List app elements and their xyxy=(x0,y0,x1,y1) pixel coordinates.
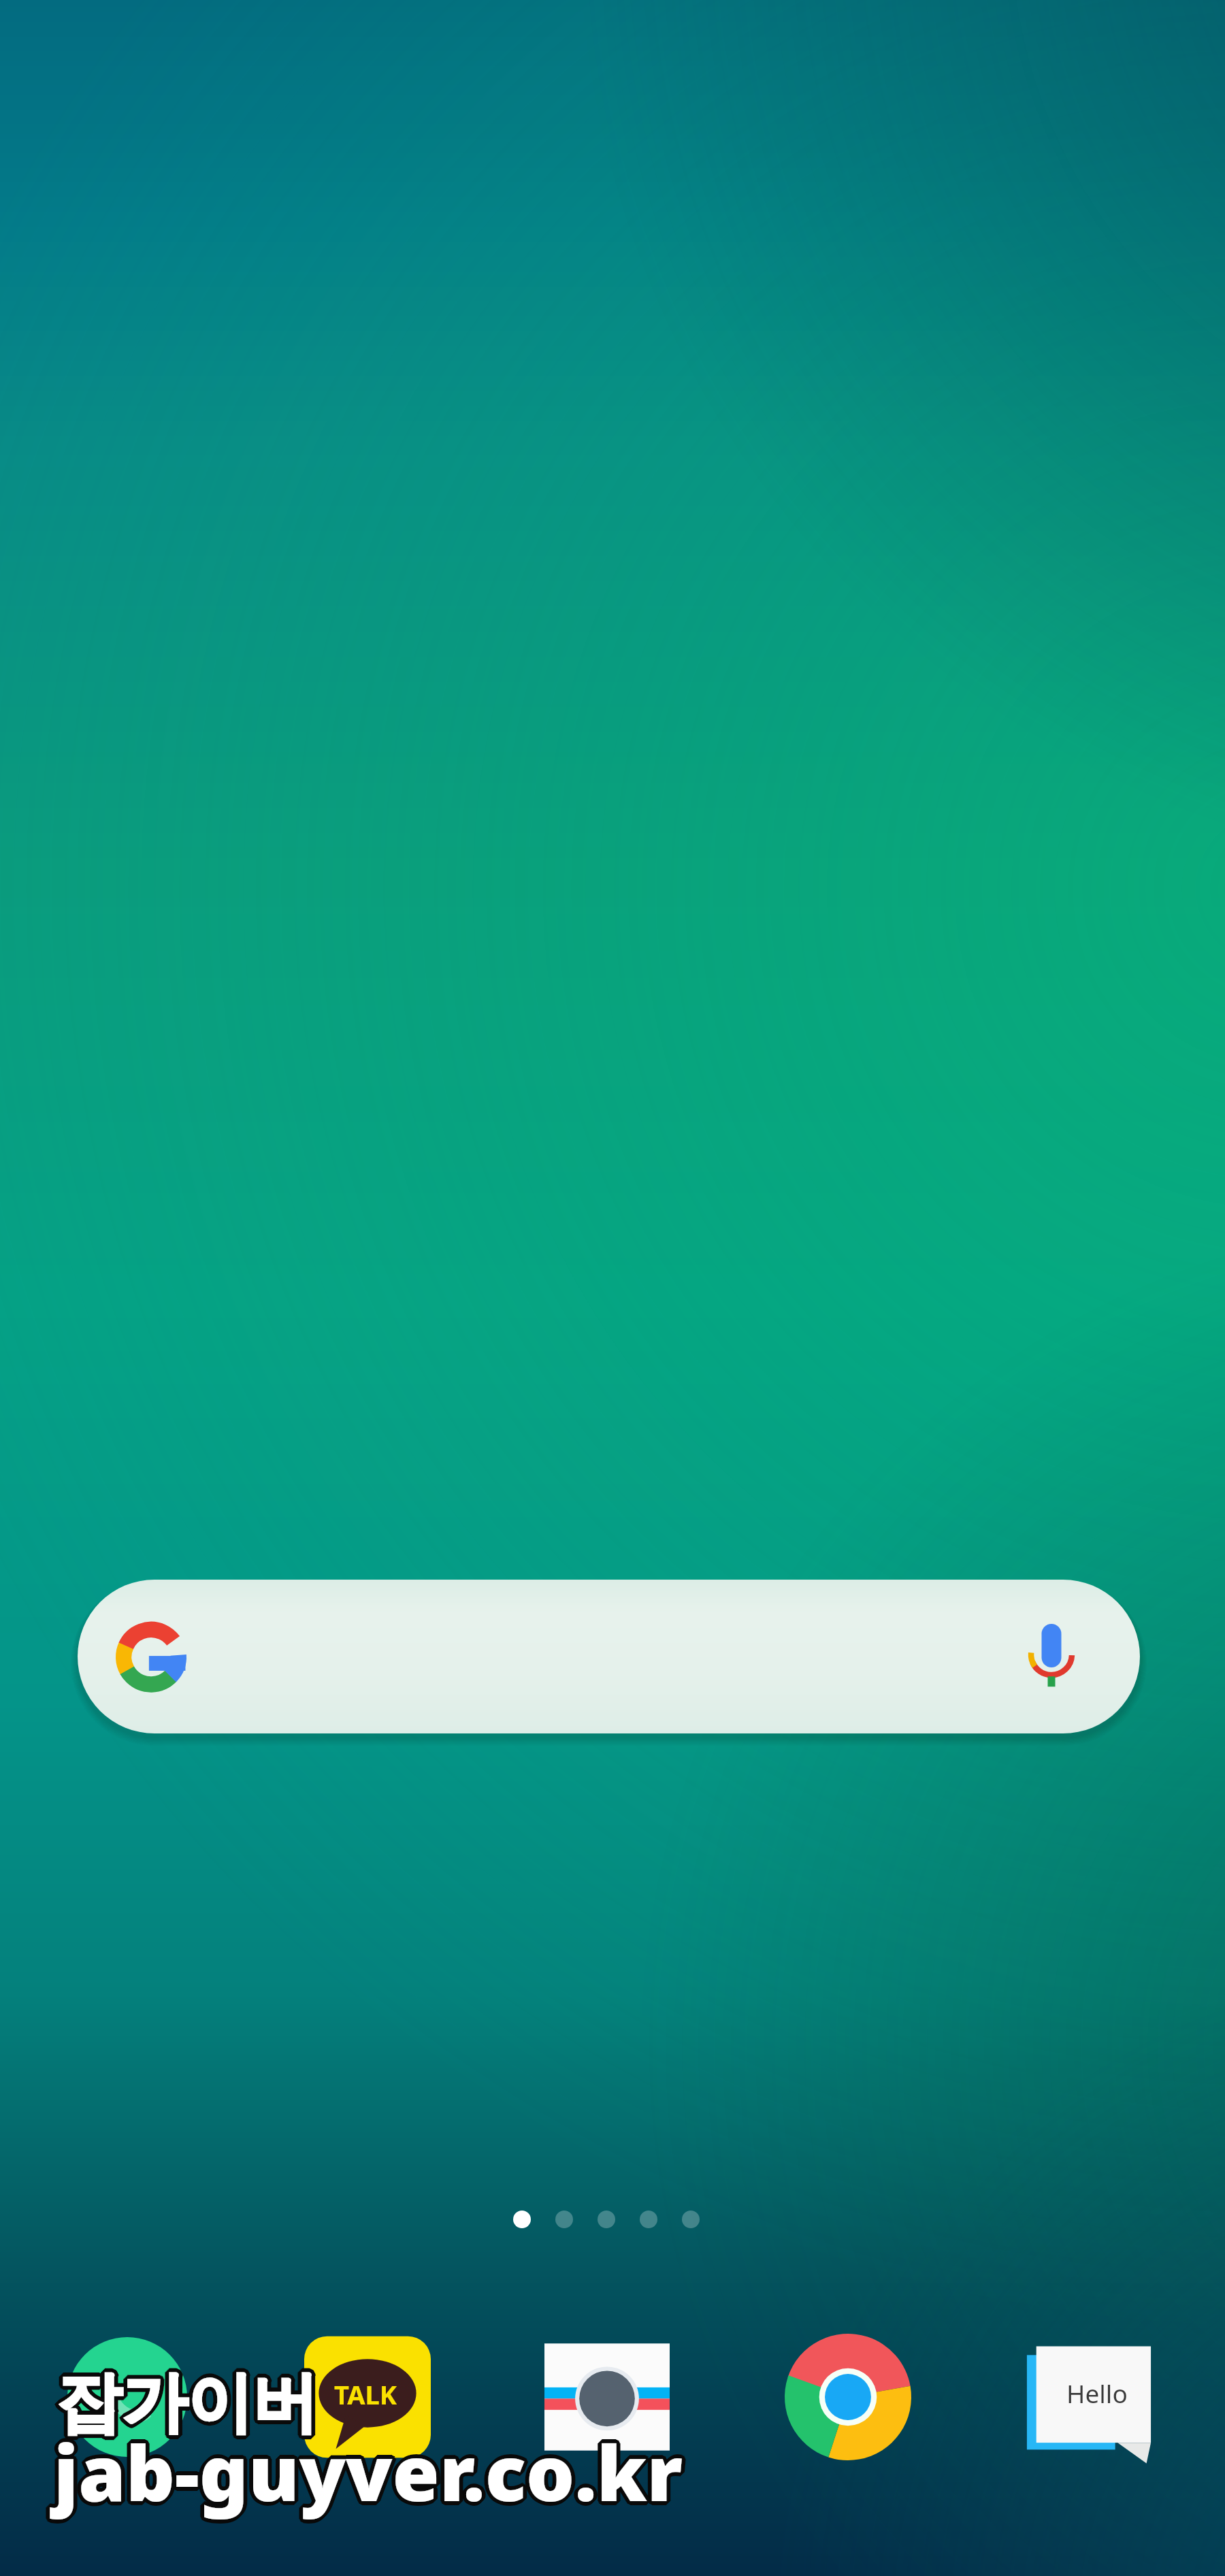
staticText: 잡가이버 xyxy=(57,2360,318,2442)
staticText: 잡가이버 xyxy=(56,2366,318,2449)
staticText: jab-guyver.co.kr xyxy=(56,2421,686,2525)
staticText: 잡가이버 xyxy=(54,2364,316,2447)
staticText: jab-guyver.co.kr xyxy=(52,2421,682,2525)
staticText: jab-guyver.co.kr xyxy=(56,2417,686,2521)
staticText: 잡가이버 xyxy=(56,2362,318,2445)
staticText: jab-guyver.co.kr xyxy=(54,2424,683,2528)
staticText: 잡가이버 xyxy=(57,2364,318,2446)
staticText: jab-guyver.co.kr xyxy=(56,2419,686,2523)
staticText: jab-guyver.co.kr xyxy=(52,2422,681,2526)
staticText: 잡가이버 xyxy=(55,2360,316,2442)
staticText: 잡가이버 xyxy=(54,2361,315,2443)
staticText: 잡가이버 xyxy=(59,2360,320,2443)
staticText: 잡가이버 xyxy=(56,2360,318,2443)
staticText: jab-guyver.co.kr xyxy=(52,2419,681,2524)
staticText: jab-guyver.co.kr xyxy=(56,2417,685,2522)
staticText: jab-guyver.co.kr xyxy=(57,2420,687,2524)
staticText: jab-guyver.co.kr xyxy=(54,2422,683,2526)
staticText: 잡가이버 xyxy=(55,2364,316,2446)
staticText: 잡가이버 xyxy=(56,2359,317,2441)
button[interactable]: Search with Google xyxy=(78,1580,1140,1733)
staticText: 잡가이버 xyxy=(54,2363,315,2445)
staticText: jab-guyver.co.kr xyxy=(53,2422,683,2526)
staticText: 잡가이버 xyxy=(59,2364,320,2447)
staticText: 잡가이버 xyxy=(56,2365,317,2447)
button[interactable]: Camera xyxy=(536,2326,679,2468)
staticText: 잡가이버 xyxy=(60,2363,321,2445)
staticText: jab-guyver.co.kr xyxy=(56,2422,685,2526)
staticText: jab-guyver.co.kr xyxy=(51,2422,681,2526)
staticText: jab-guyver.co.kr xyxy=(52,2417,682,2521)
staticText: 잡가이버 xyxy=(53,2364,314,2446)
button[interactable]: Home screen page 5 xyxy=(682,2211,700,2228)
staticText: jab-guyver.co.kr xyxy=(50,2419,679,2524)
staticText: jab-guyver.co.kr xyxy=(54,2421,684,2525)
staticText: 잡가이버 xyxy=(59,2364,321,2446)
staticText: 잡가이버 xyxy=(56,2364,318,2447)
staticText: 잡가이버 xyxy=(56,2363,317,2445)
staticText: 잡가이버 xyxy=(59,2362,320,2445)
staticText: 잡가이버 xyxy=(53,2362,314,2444)
staticText: 잡가이버 xyxy=(55,2366,316,2448)
staticText: 잡가이버 xyxy=(59,2360,321,2442)
staticText: jab-guyver.co.kr xyxy=(54,2415,683,2520)
staticText: 잡가이버 xyxy=(58,2361,319,2443)
staticText: jab-guyver.co.kr xyxy=(51,2418,681,2522)
staticText: jab-guyver.co.kr xyxy=(54,2419,683,2524)
staticText: 잡가이버 xyxy=(54,2360,316,2443)
staticText: jab-guyver.co.kr xyxy=(55,2418,685,2522)
staticText: jab-guyver.co.kr xyxy=(51,2420,681,2524)
staticText: jab-guyver.co.kr xyxy=(55,2420,685,2524)
staticText: jab-guyver.co.kr xyxy=(56,2419,685,2524)
staticText: jab-guyver.co.kr xyxy=(57,2418,687,2522)
button[interactable]: Home screen page 2 xyxy=(555,2211,573,2228)
staticText: jab-guyver.co.kr xyxy=(52,2417,681,2522)
staticText: 잡가이버 xyxy=(52,2362,314,2445)
staticText: jab-guyver.co.kr xyxy=(54,2417,683,2522)
button[interactable]: Home screen page 3 xyxy=(598,2211,615,2228)
staticText: 잡가이버 xyxy=(58,2365,319,2447)
staticText: 잡가이버 xyxy=(59,2362,321,2444)
staticText: 잡가이버 xyxy=(61,2362,322,2445)
staticText: jab-guyver.co.kr xyxy=(54,2423,684,2527)
staticText: jab-guyver.co.kr xyxy=(53,2416,683,2520)
staticText: jab-guyver.co.kr xyxy=(55,2422,685,2526)
staticText: jab-guyver.co.kr xyxy=(54,2417,684,2521)
staticText: 잡가이버 xyxy=(54,2365,315,2447)
staticText: jab-guyver.co.kr xyxy=(52,2419,682,2523)
staticText: jab-guyver.co.kr xyxy=(50,2421,680,2525)
staticText: TALK xyxy=(334,2377,397,2412)
staticText: jab-guyver.co.kr xyxy=(53,2420,683,2524)
staticText: jab-guyver.co.kr xyxy=(50,2419,680,2523)
staticText: Hello xyxy=(1066,2376,1128,2410)
button[interactable]: Chrome xyxy=(777,2326,919,2468)
staticText: 잡가이버 xyxy=(56,2361,317,2443)
button[interactable]: KakaoTalk xyxy=(296,2326,439,2468)
button[interactable]: WhatsApp xyxy=(56,2326,199,2468)
button[interactable]: Messages xyxy=(1017,2326,1160,2468)
staticText: jab-guyver.co.kr xyxy=(55,2416,685,2520)
staticText: 잡가이버 xyxy=(56,2358,318,2441)
button[interactable]: Home screen page 4 xyxy=(640,2211,657,2228)
staticText: 잡가이버 xyxy=(57,2362,318,2444)
staticText: 잡가이버 xyxy=(58,2359,319,2441)
staticText: 잡가이버 xyxy=(57,2366,318,2448)
staticText: jab-guyver.co.kr xyxy=(58,2419,687,2524)
staticText: 잡가이버 xyxy=(55,2362,316,2444)
staticText: jab-guyver.co.kr xyxy=(53,2418,683,2522)
staticText: 잡가이버 xyxy=(58,2363,319,2445)
staticText: 잡가이버 xyxy=(60,2361,321,2443)
staticText: jab-guyver.co.kr xyxy=(52,2423,682,2527)
staticText: jab-guyver.co.kr xyxy=(54,2419,684,2523)
button[interactable]: Home screen page 1 xyxy=(513,2211,531,2228)
staticText: 잡가이버 xyxy=(54,2362,316,2445)
